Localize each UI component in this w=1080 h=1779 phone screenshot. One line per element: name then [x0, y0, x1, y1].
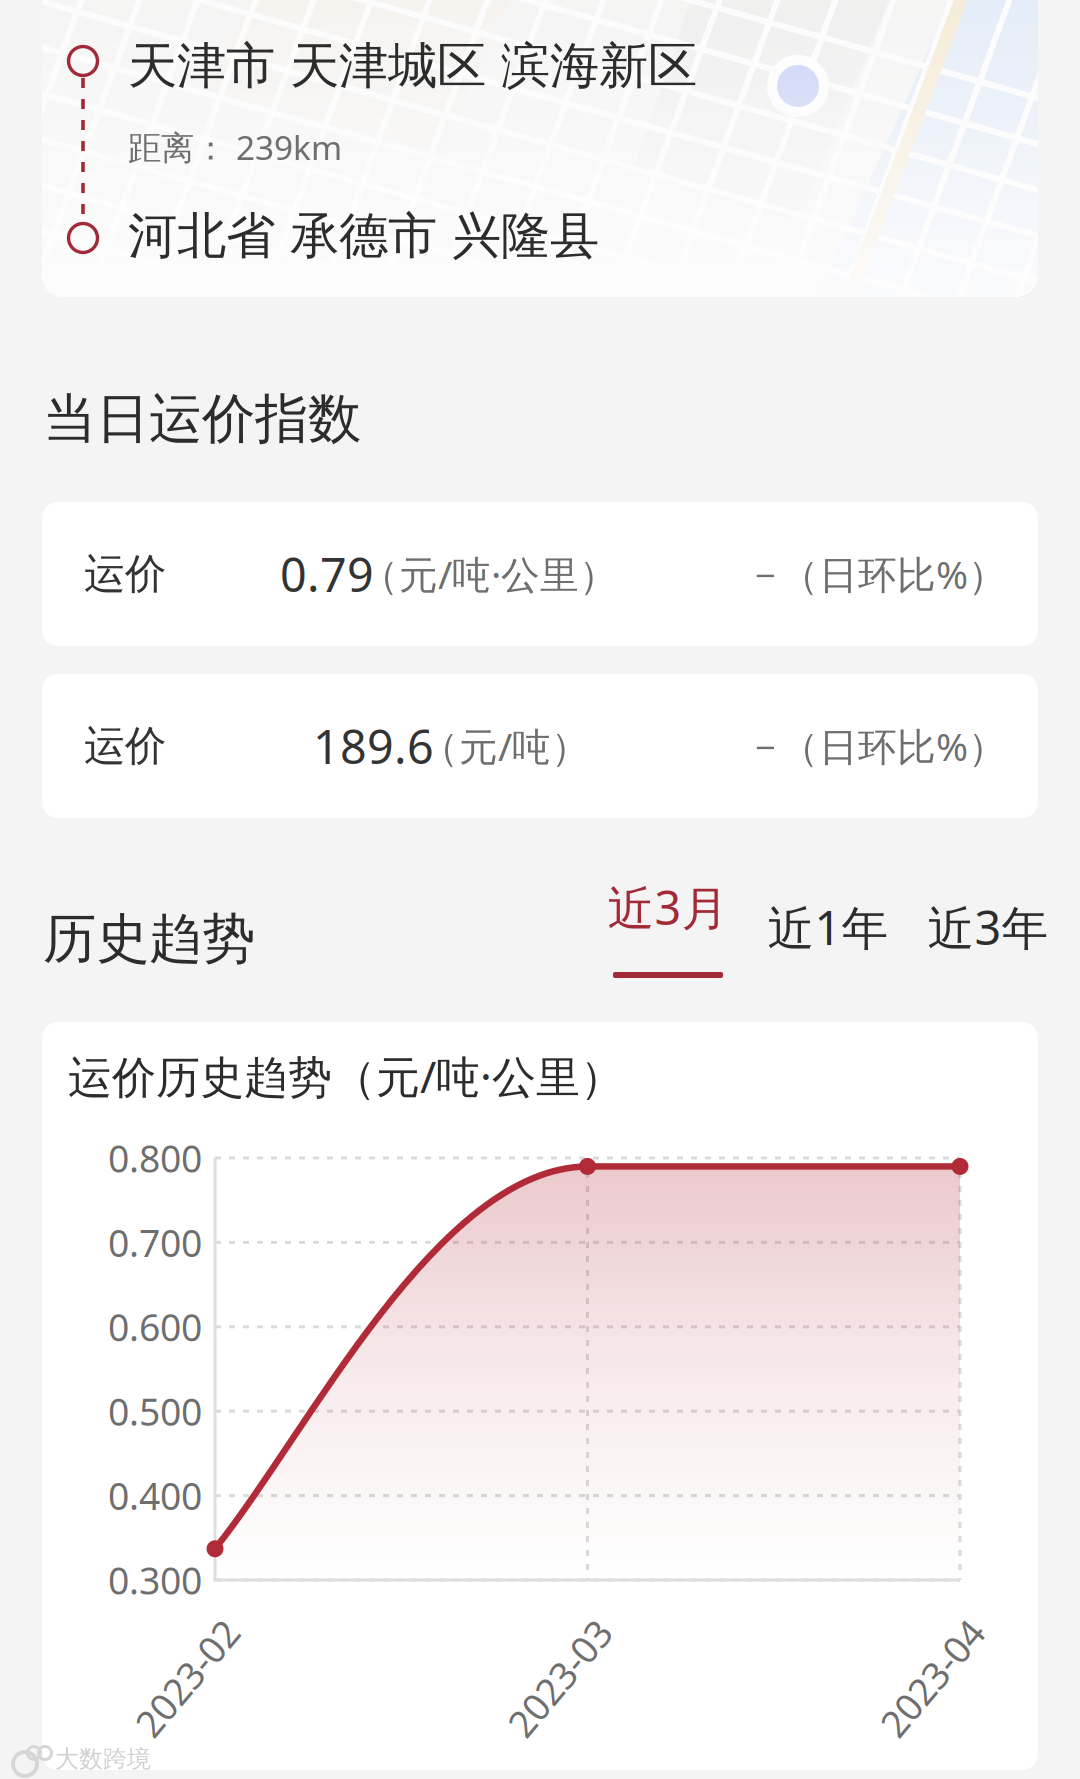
button[interactable]: 近3月: [598, 867, 738, 987]
staticText: （元/吨）: [420, 720, 590, 772]
staticText: 历史趋势: [43, 906, 255, 972]
staticText: 0.79: [280, 543, 374, 605]
staticText: 当日运价指数: [43, 386, 361, 452]
staticText: 189.6: [313, 715, 434, 777]
staticText: （日环比%）: [780, 720, 1007, 772]
staticText: 0.400: [108, 1471, 202, 1520]
staticText: 0.800: [108, 1133, 202, 1183]
staticText: －: [746, 722, 785, 770]
button[interactable]: 运价: [42, 502, 1038, 646]
staticText: 距离： 239km: [128, 125, 342, 169]
staticText: 河北省 承德市 兴隆县: [128, 206, 599, 266]
staticText: 近1年: [767, 896, 888, 958]
staticText: 0.500: [108, 1386, 202, 1436]
staticText: 运价: [84, 549, 166, 599]
staticText: 2023-04: [863, 1653, 1001, 1703]
button[interactable]: 运价: [42, 674, 1038, 818]
staticText: 大数跨境: [55, 1744, 151, 1774]
button[interactable]: 近3年: [918, 867, 1058, 987]
staticText: 2023-02: [118, 1653, 256, 1703]
staticText: 运价历史趋势（元/吨·公里）: [68, 1047, 624, 1105]
staticText: 近3年: [927, 896, 1048, 958]
staticText: （日环比%）: [780, 548, 1007, 600]
staticText: 天津市 天津城区 滨海新区: [128, 36, 697, 96]
staticText: 0.700: [108, 1218, 202, 1267]
staticText: 2023-03: [490, 1653, 628, 1703]
staticText: 0.300: [108, 1555, 202, 1605]
staticText: （元/吨·公里）: [360, 548, 618, 600]
staticText: 近3月: [607, 876, 728, 938]
staticText: 运价: [84, 721, 166, 771]
button[interactable]: 近1年: [758, 867, 898, 987]
staticText: 0.600: [108, 1302, 202, 1352]
staticText: －: [746, 550, 785, 598]
